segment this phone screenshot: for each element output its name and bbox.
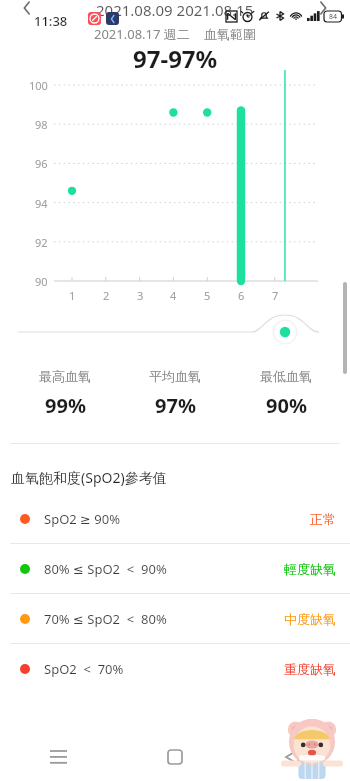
staticText: 92 bbox=[35, 235, 48, 250]
staticText: 2021.08.09 2021.08.15 bbox=[96, 0, 254, 16]
button[interactable]: Home bbox=[116, 733, 233, 781]
staticText: 99% bbox=[45, 392, 86, 419]
staticText: 6 bbox=[238, 288, 245, 303]
button[interactable]: 平均血氧 bbox=[123, 366, 227, 421]
staticText: 血氧範圍 bbox=[204, 26, 256, 42]
staticText: 重度缺氧 bbox=[284, 661, 336, 677]
staticText: SpO2 < 70% bbox=[44, 660, 124, 678]
button[interactable]: SpO2 ≥ 90% bbox=[0, 494, 350, 543]
button[interactable]: Day selector bbox=[0, 308, 350, 354]
staticText: 100 bbox=[29, 78, 48, 93]
staticText: 97% bbox=[155, 392, 196, 419]
staticText: 3 bbox=[137, 288, 144, 303]
staticText: 90 bbox=[35, 274, 48, 289]
staticText: 最低血氧 bbox=[260, 368, 312, 384]
staticText: 94 bbox=[35, 196, 48, 211]
staticText: 7 bbox=[272, 288, 279, 303]
staticText: 70% ≤ SpO2 < 80% bbox=[44, 610, 167, 628]
staticText: 84 bbox=[329, 12, 338, 22]
staticText: 1 bbox=[69, 288, 76, 303]
staticText: 96 bbox=[35, 156, 48, 171]
button[interactable]: Next week bbox=[312, 0, 334, 16]
button[interactable]: 70% ≤ SpO2 < 80% bbox=[0, 594, 350, 643]
button[interactable]: Previous week bbox=[16, 0, 38, 16]
staticText: 2021.08.17 週二 bbox=[94, 25, 190, 43]
staticText: 97-97% bbox=[133, 42, 218, 75]
button[interactable]: 最高血氧 bbox=[13, 366, 117, 421]
button[interactable]: SpO2 < 70% bbox=[0, 644, 350, 693]
staticText: 4 bbox=[170, 288, 177, 303]
staticText: 2 bbox=[103, 288, 110, 303]
staticText: 最高血氧 bbox=[39, 368, 91, 384]
button[interactable]: Recent apps bbox=[0, 733, 116, 781]
staticText: 中度缺氧 bbox=[284, 611, 336, 627]
staticText: 輕度缺氧 bbox=[284, 561, 336, 577]
staticText: 血氧飽和度(SpO2)參考值 bbox=[11, 468, 167, 487]
staticText: 正常 bbox=[310, 511, 336, 527]
button[interactable]: 80% ≤ SpO2 < 90% bbox=[0, 544, 350, 593]
staticText: 80% ≤ SpO2 < 90% bbox=[44, 560, 167, 578]
button[interactable]: 最低血氧 bbox=[234, 366, 338, 421]
staticText: 90% bbox=[266, 392, 307, 419]
button[interactable]: Back bbox=[233, 733, 350, 781]
staticText: 5 bbox=[204, 288, 211, 303]
staticText: 平均血氧 bbox=[149, 368, 201, 384]
staticText: SpO2 ≥ 90% bbox=[44, 510, 121, 528]
staticText: 11:38 bbox=[34, 12, 68, 30]
staticText: 98 bbox=[35, 117, 48, 132]
